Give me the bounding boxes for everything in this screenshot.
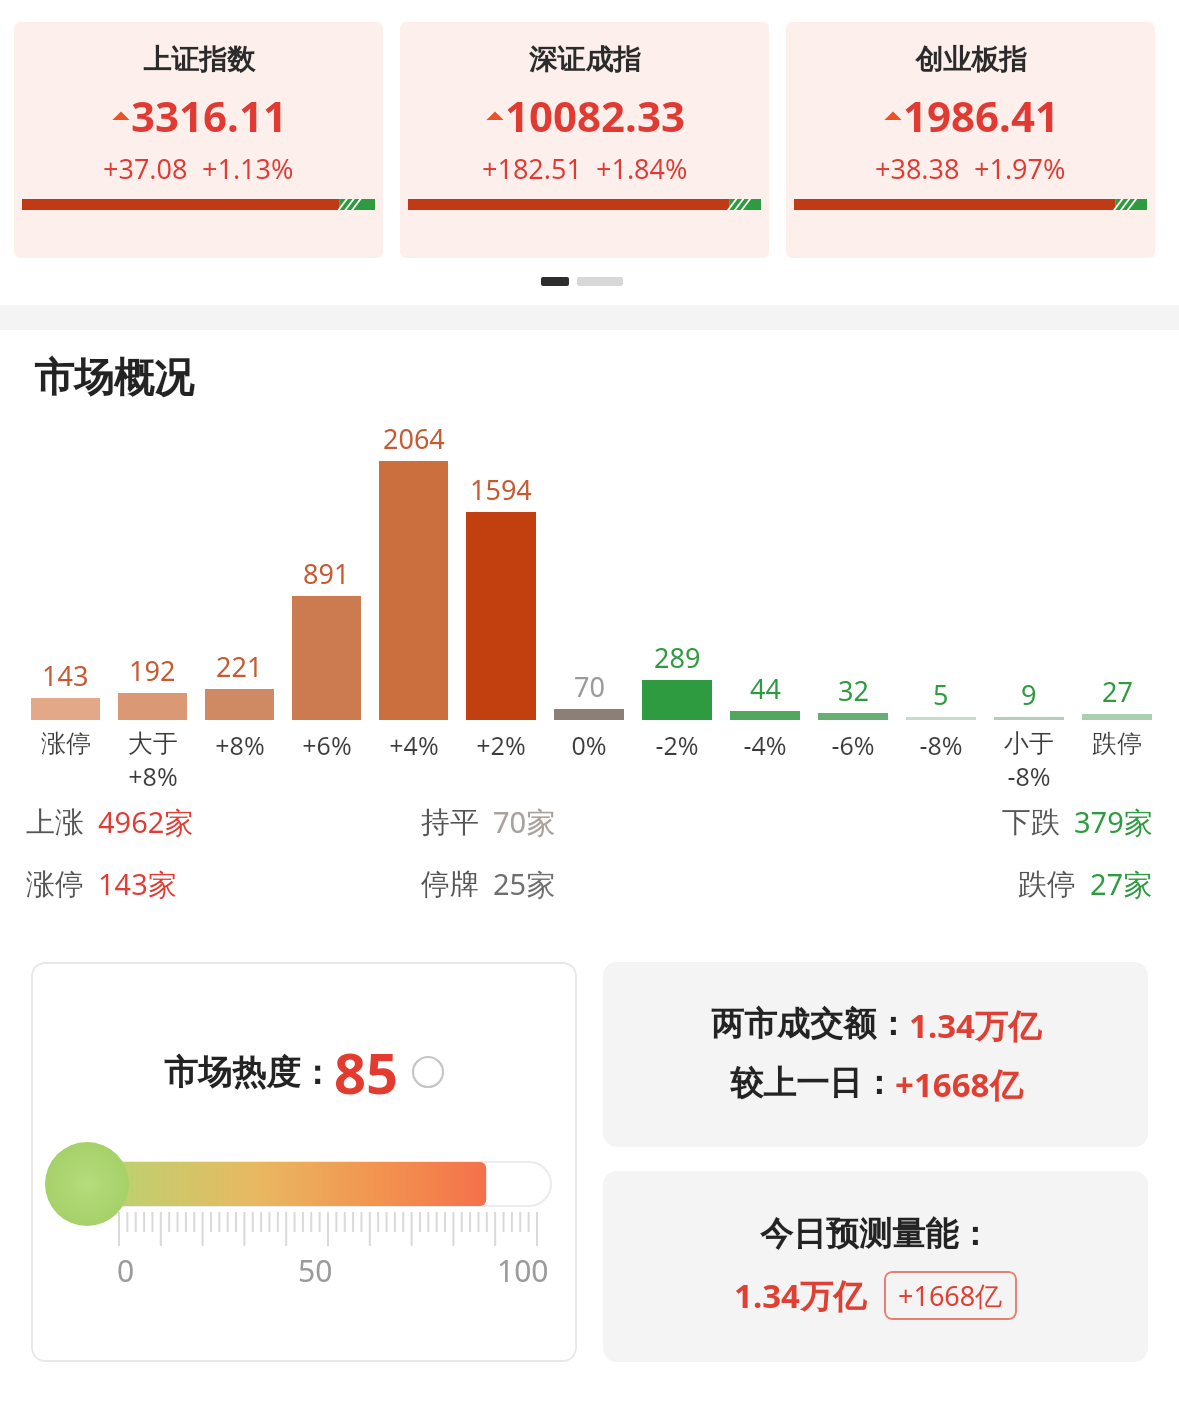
staticText: -2% [655, 728, 699, 762]
staticText: +37.08 [103, 150, 188, 187]
staticText: 4962家 [98, 802, 194, 842]
staticText: 1.34万亿 [734, 1273, 866, 1318]
staticText: 大于 [128, 728, 178, 759]
button[interactable]: 停牌 [421, 864, 787, 904]
staticText: 1.34万亿 [909, 1003, 1041, 1048]
staticText: 32 [838, 672, 869, 709]
staticText: 1986.41 [903, 87, 1059, 144]
staticText: 下跌 [1002, 804, 1060, 841]
staticText: -6% [831, 728, 875, 762]
staticText: +8% [215, 728, 265, 762]
staticText: 跌停 [1092, 728, 1142, 759]
button[interactable]: 下跌 [1002, 802, 1153, 842]
staticText: 379家 [1074, 802, 1153, 842]
staticText: +1668亿 [898, 1277, 1003, 1314]
staticText: 0 [117, 1250, 135, 1291]
staticText: 深证成指 [529, 42, 641, 77]
button[interactable]: 两市成交额： [603, 962, 1148, 1147]
staticText: +182.51 [482, 150, 582, 187]
button[interactable]: 市场热度： [31, 962, 577, 1362]
staticText: 上涨 [26, 804, 84, 841]
staticText: 25家 [493, 864, 556, 904]
staticText: +6% [302, 728, 352, 762]
staticText: 50 [298, 1250, 333, 1291]
staticText: 创业板指 [915, 42, 1027, 77]
staticText: 27 [1102, 673, 1133, 710]
staticText: 市场概况 [34, 352, 194, 402]
staticText: 27家 [1090, 864, 1153, 904]
staticText: 今日预测量能： [760, 1213, 991, 1255]
staticText: +1668亿 [895, 1062, 1023, 1107]
staticText: +1.97% [974, 150, 1066, 187]
staticText: 10082.33 [505, 87, 685, 144]
staticText: +1.13% [202, 150, 294, 187]
staticText: +4% [389, 728, 439, 762]
button[interactable]: 深证成指 [400, 22, 769, 258]
staticText: 192 [129, 652, 176, 689]
staticText: 5 [933, 676, 949, 713]
staticText: +1.84% [596, 150, 688, 187]
button[interactable]: 上涨 [26, 802, 421, 842]
staticText: 小于 [1004, 728, 1054, 759]
staticText: 2064 [383, 420, 445, 457]
staticText: -8% [919, 728, 963, 762]
staticText: 0% [571, 728, 607, 762]
staticText: 85 [334, 1034, 399, 1110]
button[interactable]: 涨停 [26, 864, 421, 904]
staticText: 891 [303, 555, 350, 592]
staticText: 9 [1021, 676, 1037, 713]
staticText: 停牌 [421, 866, 479, 903]
staticText: 较上一日： [730, 1062, 895, 1104]
staticText: 两市成交额： [711, 1003, 909, 1045]
staticText: +2% [476, 728, 526, 762]
staticText: 涨停 [26, 866, 84, 903]
staticText: 100 [497, 1250, 549, 1291]
staticText: +8% [128, 759, 178, 793]
staticText: 上证指数 [143, 42, 255, 77]
staticText: 143 [42, 657, 89, 694]
staticText: 跌停 [1018, 866, 1076, 903]
staticText: 289 [654, 639, 701, 676]
button[interactable]: 持平 [421, 802, 787, 842]
staticText: 涨停 [41, 728, 91, 759]
staticText: 143家 [98, 864, 177, 904]
staticText: -4% [743, 728, 787, 762]
button[interactable]: 跌停 [1018, 864, 1153, 904]
button[interactable]: 上证指数 [14, 22, 383, 258]
button[interactable]: 今日预测量能： [603, 1171, 1148, 1362]
staticText: 持平 [421, 804, 479, 841]
staticText: 1594 [470, 471, 532, 508]
staticText: 221 [216, 648, 263, 685]
staticText: 70家 [493, 802, 556, 842]
staticText: +38.38 [875, 150, 960, 187]
button[interactable]: Help about market heat [411, 1055, 445, 1089]
staticText: 70 [574, 668, 605, 705]
button[interactable]: 创业板指 [786, 22, 1155, 258]
staticText: -8% [1007, 759, 1051, 793]
staticText: 44 [750, 670, 781, 707]
staticText: 3316.11 [131, 87, 287, 144]
staticText: 市场热度： [164, 1051, 334, 1094]
